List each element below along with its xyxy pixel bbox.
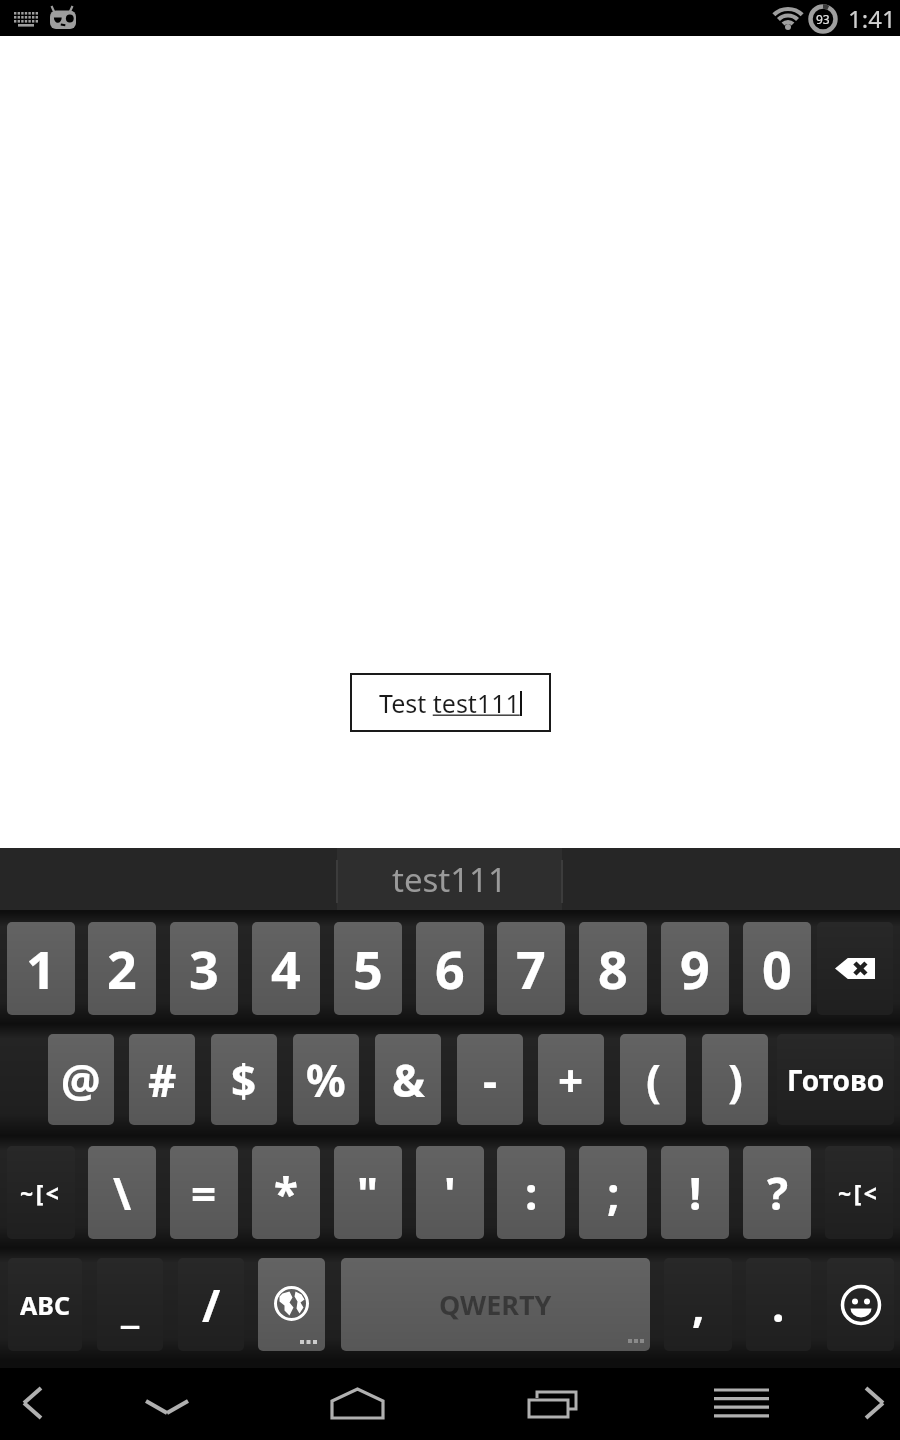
button[interactable] bbox=[320, 1378, 394, 1430]
staticText: ABC bbox=[20, 1288, 70, 1322]
staticText: 6 bbox=[435, 933, 465, 1004]
button[interactable]: = bbox=[170, 1146, 238, 1239]
button[interactable]: ~[< bbox=[7, 1146, 75, 1239]
button[interactable]: Готово bbox=[777, 1034, 894, 1125]
staticText: ! bbox=[689, 1163, 702, 1223]
staticText: 4 bbox=[271, 933, 301, 1004]
button[interactable]: 3 bbox=[170, 922, 238, 1015]
staticText: 8 bbox=[598, 933, 628, 1004]
button[interactable]: ~[< bbox=[825, 1146, 893, 1239]
staticText: & bbox=[392, 1050, 425, 1110]
staticText: % bbox=[306, 1050, 346, 1110]
staticText: 2 bbox=[107, 933, 137, 1004]
staticText: * bbox=[274, 1163, 298, 1223]
staticText: ( bbox=[646, 1050, 661, 1110]
button[interactable]: + bbox=[538, 1034, 604, 1125]
staticText: @ bbox=[61, 1050, 101, 1110]
staticText: 93 bbox=[816, 11, 830, 27]
button[interactable] bbox=[705, 1378, 779, 1430]
button[interactable]: 5 bbox=[334, 922, 402, 1015]
button[interactable]: 9 bbox=[661, 922, 729, 1015]
button[interactable]: 6 bbox=[416, 922, 484, 1015]
staticText: , bbox=[692, 1275, 705, 1335]
button[interactable]: , bbox=[664, 1258, 732, 1351]
button[interactable]: % bbox=[293, 1034, 359, 1125]
button[interactable]: 1 bbox=[7, 922, 75, 1015]
button[interactable]: " bbox=[334, 1146, 402, 1239]
button[interactable] bbox=[518, 1378, 592, 1430]
button[interactable]: ) bbox=[702, 1034, 768, 1125]
staticText: 9 bbox=[680, 933, 710, 1004]
staticText: test111 bbox=[392, 857, 507, 902]
staticText: 0 bbox=[762, 933, 792, 1004]
staticText: . bbox=[772, 1275, 785, 1335]
button[interactable]: test111 bbox=[337, 848, 562, 910]
button[interactable] bbox=[852, 1378, 896, 1430]
staticText: " bbox=[357, 1163, 379, 1223]
button[interactable]: \ bbox=[88, 1146, 156, 1239]
staticText: \ bbox=[113, 1163, 132, 1223]
staticText: / bbox=[202, 1275, 221, 1335]
staticText: 1 bbox=[26, 933, 56, 1004]
button[interactable]: _ bbox=[97, 1258, 163, 1351]
button[interactable]: $ bbox=[211, 1034, 277, 1125]
button[interactable]: 8 bbox=[579, 922, 647, 1015]
button[interactable]: 0 bbox=[743, 922, 811, 1015]
button[interactable] bbox=[817, 922, 893, 1015]
staticText: 7 bbox=[516, 933, 546, 1004]
button[interactable]: ( bbox=[620, 1034, 686, 1125]
staticText: ; bbox=[607, 1163, 620, 1223]
staticText: Test test111 bbox=[379, 686, 520, 720]
button[interactable]: QWERTY bbox=[341, 1258, 650, 1351]
button[interactable] bbox=[258, 1258, 325, 1351]
staticText: # bbox=[148, 1050, 177, 1110]
button[interactable]: ? bbox=[743, 1146, 811, 1239]
staticText: _ bbox=[121, 1275, 140, 1335]
staticText: 5 bbox=[353, 933, 383, 1004]
button[interactable]: / bbox=[178, 1258, 244, 1351]
staticText: ' bbox=[444, 1163, 456, 1223]
button[interactable]: 2 bbox=[88, 922, 156, 1015]
button[interactable] bbox=[140, 1378, 196, 1430]
button[interactable]: . bbox=[746, 1258, 811, 1351]
staticText: QWERTY bbox=[439, 1286, 552, 1323]
staticText: + bbox=[558, 1050, 584, 1110]
button[interactable]: Test test111 bbox=[350, 673, 551, 732]
staticText: $ bbox=[231, 1050, 257, 1110]
button[interactable]: # bbox=[129, 1034, 195, 1125]
staticText: - bbox=[483, 1050, 498, 1110]
button[interactable]: : bbox=[497, 1146, 565, 1239]
button[interactable]: & bbox=[375, 1034, 441, 1125]
button[interactable]: ABC bbox=[8, 1258, 82, 1351]
staticText: Готово bbox=[787, 1061, 885, 1099]
staticText: ~[< bbox=[838, 1177, 880, 1208]
button[interactable]: - bbox=[457, 1034, 523, 1125]
button[interactable]: @ bbox=[48, 1034, 114, 1125]
button[interactable]: ! bbox=[661, 1146, 729, 1239]
button[interactable]: * bbox=[252, 1146, 320, 1239]
staticText: ~[< bbox=[20, 1177, 62, 1208]
button[interactable]: ; bbox=[579, 1146, 647, 1239]
staticText: 1:41 bbox=[848, 2, 896, 35]
staticText: : bbox=[525, 1163, 538, 1223]
button[interactable]: 4 bbox=[252, 922, 320, 1015]
staticText: 3 bbox=[189, 933, 219, 1004]
button[interactable] bbox=[827, 1258, 894, 1351]
staticText: ? bbox=[767, 1163, 788, 1223]
staticText: ) bbox=[728, 1050, 743, 1110]
button[interactable]: ' bbox=[416, 1146, 484, 1239]
staticText: = bbox=[191, 1163, 217, 1223]
button[interactable]: 7 bbox=[497, 922, 565, 1015]
button[interactable] bbox=[8, 1378, 58, 1430]
